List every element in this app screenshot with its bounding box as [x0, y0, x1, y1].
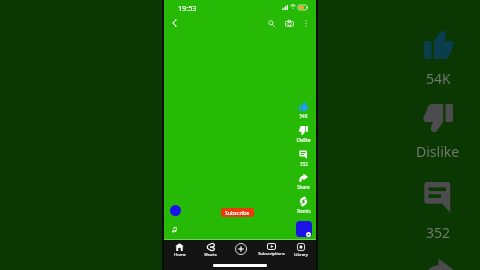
staticText: Dislike: [416, 142, 460, 161]
staticText: 54K: [426, 69, 451, 88]
staticText: 352: [426, 223, 451, 242]
staticText: Remix: [297, 208, 311, 214]
staticText: 19:53: [178, 3, 197, 13]
button[interactable]: Create: [226, 243, 256, 255]
staticText: 352: [300, 161, 308, 167]
button[interactable]: Sound: [296, 221, 312, 237]
staticText: Library: [294, 252, 308, 258]
button[interactable]: 352: [292, 148, 315, 167]
staticText: Home: [174, 252, 186, 258]
staticText: Share: [297, 184, 310, 190]
button[interactable]: Channel avatar: [170, 205, 181, 216]
button[interactable]: Search: [263, 15, 279, 31]
button[interactable]: Shorts: [195, 243, 226, 258]
button[interactable]: Subscribe: [221, 208, 254, 217]
staticText: Subscribe: [225, 209, 250, 216]
button[interactable]: 54K: [292, 100, 315, 119]
button[interactable]: Home: [164, 243, 195, 258]
button[interactable]: Camera: [281, 15, 297, 31]
staticText: Shorts: [204, 252, 217, 258]
button[interactable]: Library: [286, 243, 316, 258]
button[interactable]: Back: [166, 15, 182, 31]
staticText: Dislike: [296, 137, 311, 143]
button[interactable]: More options: [298, 15, 314, 31]
button[interactable]: Subscriptions: [256, 243, 286, 257]
staticText: 54K: [299, 113, 308, 119]
button[interactable]: Dislike: [292, 124, 315, 143]
staticText: Subscriptions: [258, 251, 285, 257]
button[interactable]: Remix: [292, 195, 315, 214]
button[interactable]: Share: [292, 171, 315, 190]
